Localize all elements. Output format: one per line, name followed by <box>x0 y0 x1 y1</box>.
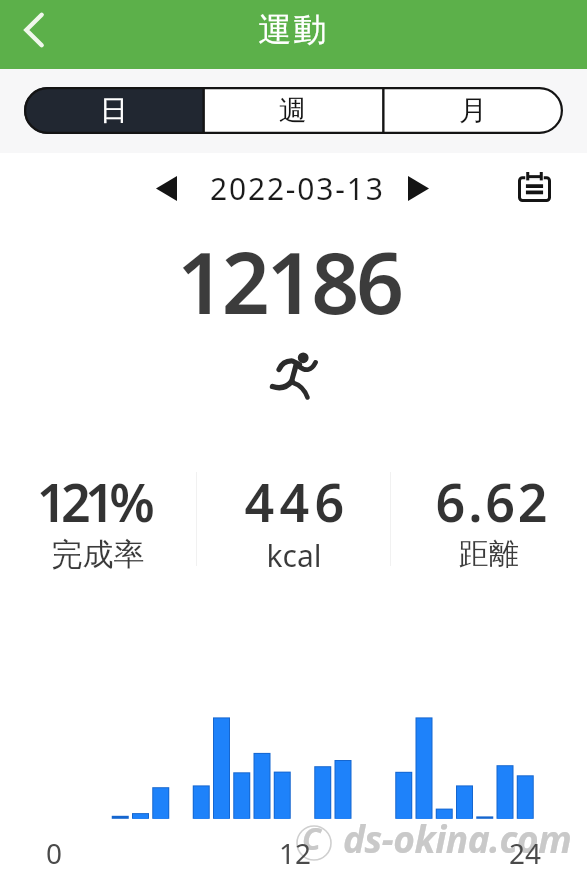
staticText: 121% <box>0 466 213 537</box>
button[interactable]: 月 <box>383 87 563 134</box>
button[interactable]: 446 <box>177 466 417 571</box>
staticText: 距離 <box>369 535 587 573</box>
staticText: ds-okina.com <box>343 813 572 863</box>
button[interactable]: Previous day <box>149 171 184 206</box>
button[interactable]: 121% <box>0 466 213 571</box>
staticText: 446 <box>177 466 417 537</box>
staticText: 週 <box>279 93 307 128</box>
staticText: 12 <box>279 834 312 872</box>
button[interactable]: History <box>510 163 558 211</box>
staticText: 月 <box>459 93 487 128</box>
staticText: 12186 <box>177 224 401 324</box>
staticText: C <box>302 817 322 859</box>
button[interactable]: 日 <box>24 87 203 134</box>
staticText: kcal <box>174 535 414 576</box>
staticText: 日 <box>100 93 128 128</box>
staticText: 6.62 <box>373 466 587 537</box>
button[interactable]: Back <box>4 0 64 60</box>
staticText: 24 <box>509 834 542 872</box>
button[interactable]: 6.62 <box>373 466 587 571</box>
staticText: 0 <box>46 834 63 872</box>
staticText: 2022-03-13 <box>210 168 385 209</box>
button[interactable]: Next day <box>401 171 436 206</box>
button[interactable]: 週 <box>203 87 383 134</box>
staticText: 完成率 <box>0 535 218 574</box>
staticText: 運動 <box>258 9 329 51</box>
